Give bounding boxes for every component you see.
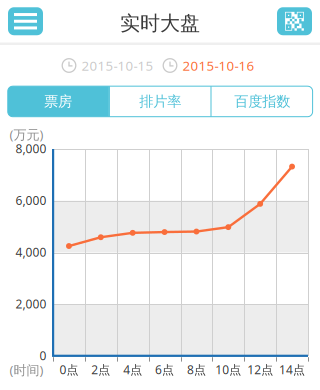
staticText: 0点 bbox=[59, 361, 78, 378]
button[interactable]: 百度指数 bbox=[211, 86, 313, 117]
staticText: 4点 bbox=[123, 361, 142, 378]
button[interactable]: Scan QR code bbox=[277, 7, 312, 35]
staticText: 2015-10-16 bbox=[182, 56, 254, 75]
button[interactable]: 排片率 bbox=[110, 86, 210, 117]
staticText: 12点 bbox=[247, 361, 273, 378]
staticText: 0 bbox=[39, 347, 46, 364]
staticText: 排片率 bbox=[139, 92, 181, 110]
staticText: 票房 bbox=[44, 92, 72, 110]
button[interactable]: Menu bbox=[8, 7, 43, 35]
staticText: 10点 bbox=[215, 361, 241, 378]
staticText: 2,000 bbox=[15, 296, 46, 312]
staticText: 4,000 bbox=[15, 244, 46, 260]
staticText: (万元) bbox=[9, 125, 43, 143]
staticText: 8点 bbox=[187, 361, 206, 378]
staticText: 百度指数 bbox=[234, 92, 290, 110]
staticText: 2015-10-15 bbox=[81, 56, 153, 75]
staticText: 2点 bbox=[91, 361, 110, 378]
button[interactable]: 票房 bbox=[7, 86, 109, 117]
staticText: 8,000 bbox=[15, 140, 46, 157]
staticText: (时间) bbox=[9, 361, 43, 379]
staticText: 实时大盘 bbox=[120, 11, 200, 36]
staticText: 14点 bbox=[279, 361, 305, 378]
staticText: 6点 bbox=[155, 361, 174, 378]
staticText: 6,000 bbox=[15, 192, 46, 208]
